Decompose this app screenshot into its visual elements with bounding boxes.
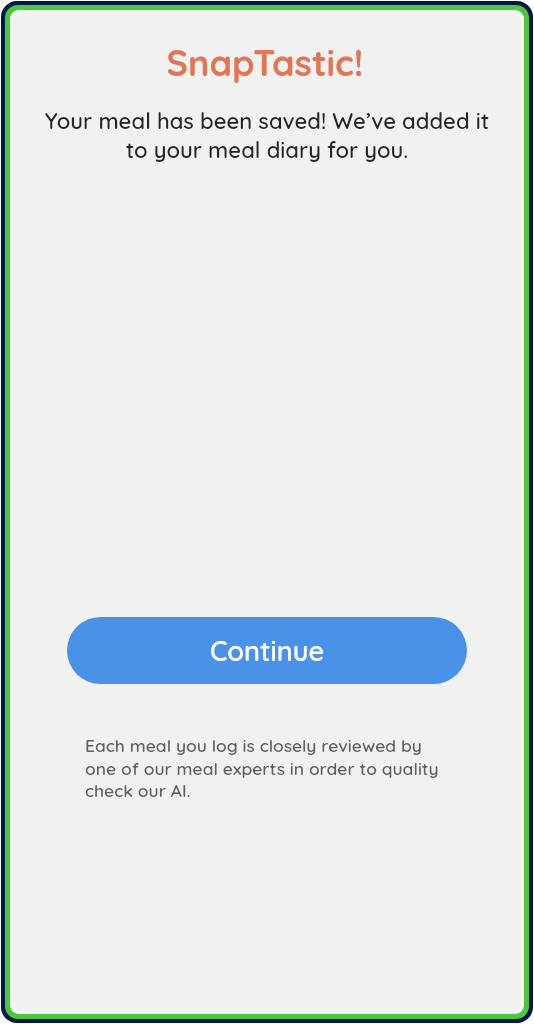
staticText: Your meal has been saved! We’ve added it… <box>40 107 494 164</box>
staticText: Continue <box>210 634 325 668</box>
button[interactable]: Continue <box>67 617 467 684</box>
staticText: Each meal you log is closely reviewed by… <box>85 735 445 801</box>
staticText: SnapTastic! <box>10 40 520 85</box>
